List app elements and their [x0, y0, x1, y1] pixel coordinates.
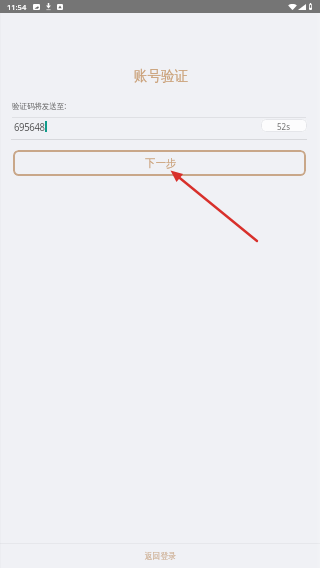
other: Notifications — [33, 3, 63, 10]
staticText: 返回登录 — [145, 551, 176, 562]
staticText: 验证码将发送至: — [12, 100, 67, 111]
button[interactable]: 52s — [261, 119, 307, 132]
staticText: 账号验证 — [14, 67, 308, 86]
staticText: 11:54 — [7, 2, 27, 12]
button[interactable]: 下一步 — [13, 150, 306, 176]
staticText: 695648 — [14, 119, 45, 134]
other: Status icons — [288, 3, 312, 10]
staticText: 52s — [277, 121, 290, 132]
button[interactable]: 返回登录 — [0, 543, 320, 568]
staticText: 下一步 — [145, 156, 177, 170]
